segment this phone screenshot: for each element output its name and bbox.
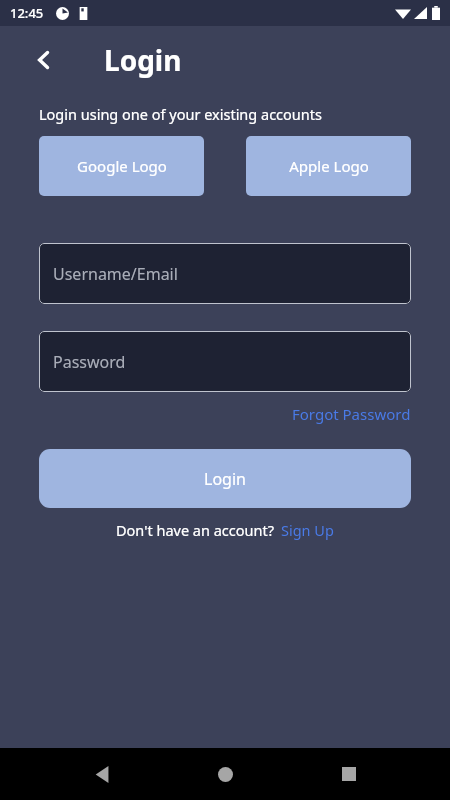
- button[interactable]: Forgot Password: [292, 402, 411, 426]
- staticText: Don't have an account?: [116, 520, 274, 540]
- staticText: 12:45: [10, 4, 44, 22]
- staticText: Apple Logo: [289, 156, 369, 176]
- button[interactable]: Apple Logo: [246, 136, 411, 196]
- button[interactable]: Recent apps: [327, 752, 371, 796]
- staticText: Google Logo: [77, 156, 167, 176]
- staticText: Login using one of your existing account…: [39, 104, 322, 124]
- button[interactable]: Back: [22, 38, 66, 82]
- button[interactable]: Sign Up: [281, 520, 334, 540]
- button[interactable]: Login: [39, 449, 411, 508]
- staticText: Login: [204, 468, 246, 490]
- staticText: Login: [104, 41, 182, 79]
- button[interactable]: Back: [80, 752, 124, 796]
- staticText: Password: [53, 351, 126, 373]
- button[interactable]: Google Logo: [39, 136, 204, 196]
- button[interactable]: Home: [203, 752, 247, 796]
- button[interactable]: Password: [39, 331, 411, 392]
- staticText: Username/Email: [53, 263, 178, 285]
- button[interactable]: Username/Email: [39, 243, 411, 304]
